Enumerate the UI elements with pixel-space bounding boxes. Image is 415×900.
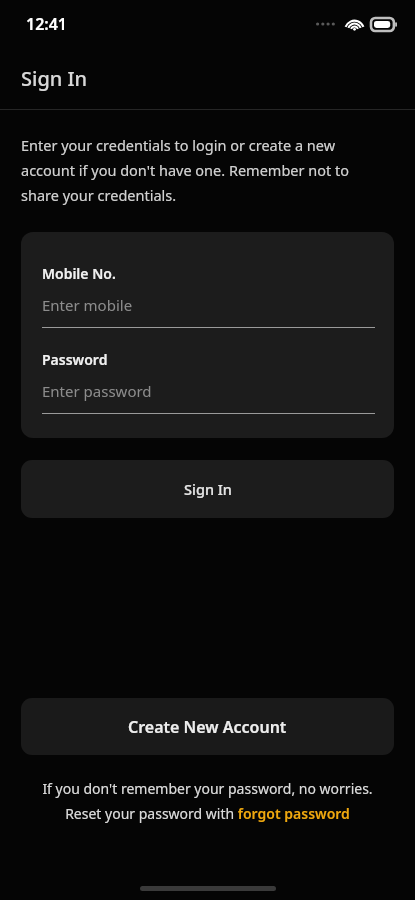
button[interactable]: Create New Account [21,698,394,755]
staticText: Create New Account [128,716,287,738]
staticText: Sign In [21,65,88,92]
staticText: Enter your credentials to login or creat… [21,135,385,205]
button[interactable]: Mobile No. [42,264,375,328]
staticText: Password [42,350,108,369]
button[interactable]: Password [42,350,375,414]
staticText: Mobile No. [42,264,116,283]
staticText: Enter password [42,381,152,401]
staticText: Sign In [184,479,232,499]
button[interactable]: Sign In [21,460,394,518]
staticText: Enter mobile [42,295,133,315]
staticText: 12:41 [26,13,68,35]
button[interactable]: If you don't remember your password, no … [36,779,379,823]
